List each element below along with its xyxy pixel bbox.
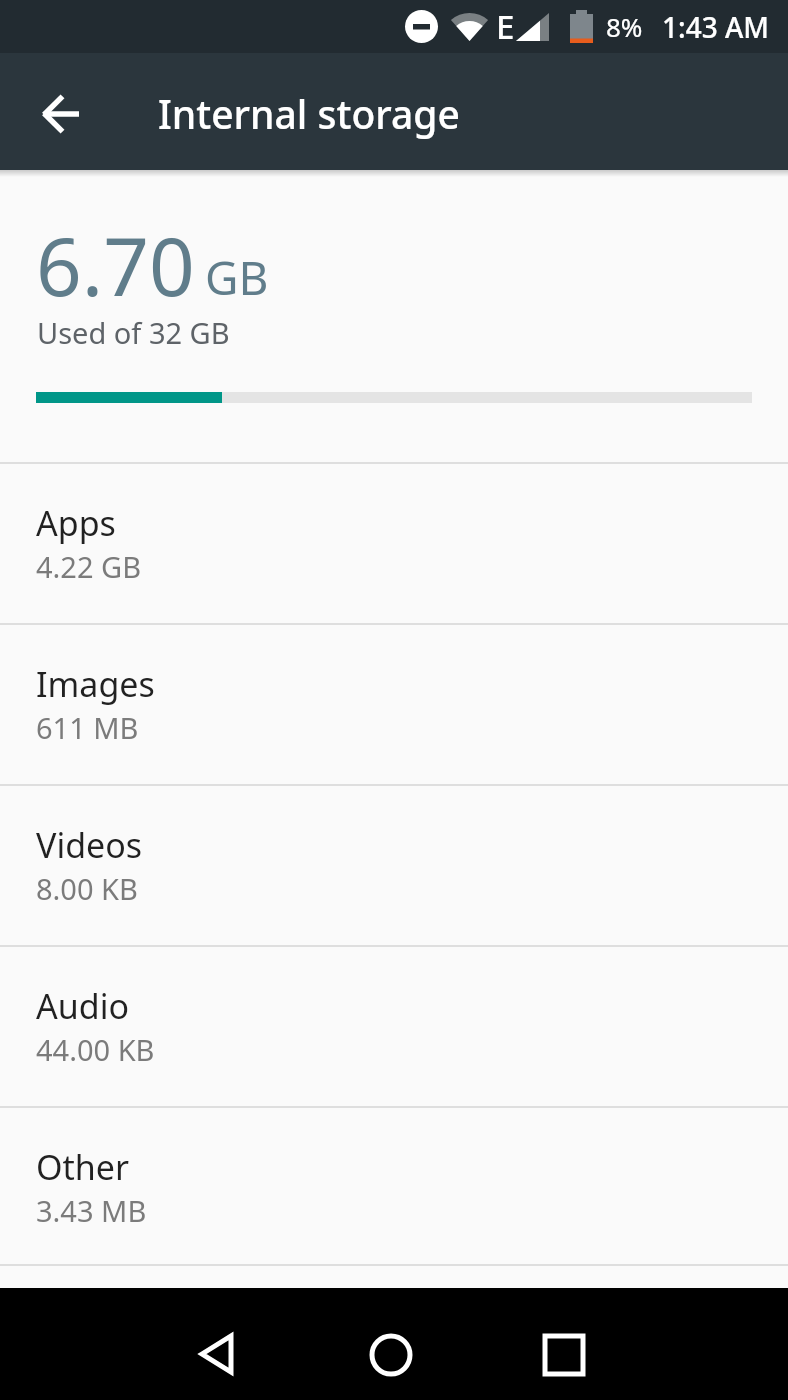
staticText: Videos [36,822,143,868]
button[interactable] [532,1323,596,1387]
staticText: Images [36,661,155,707]
staticText: 4.22 GB [36,547,142,586]
button[interactable]: Apps [0,462,788,623]
button[interactable]: Other [0,1106,788,1264]
button[interactable] [188,1323,252,1387]
staticText: GB [205,246,269,309]
button[interactable] [0,53,104,170]
staticText: Used of 32 GB [37,313,230,352]
staticText: 8% [606,9,643,44]
button[interactable]: Videos [0,784,788,945]
staticText: 8.00 KB [36,869,138,908]
staticText: 1:43 AM [662,8,769,46]
staticText: 44.00 KB [36,1030,155,1069]
staticText: 6.70 [36,210,195,319]
staticText: 611 MB [36,708,139,747]
staticText: E [496,4,515,49]
staticText: 3.43 MB [36,1191,147,1230]
button[interactable] [359,1323,423,1387]
staticText: Audio [36,983,129,1029]
staticText: Apps [36,500,116,546]
button[interactable]: Audio [0,945,788,1106]
staticText: Internal storage [158,87,460,140]
staticText: Other [36,1144,130,1190]
button[interactable]: Images [0,623,788,784]
